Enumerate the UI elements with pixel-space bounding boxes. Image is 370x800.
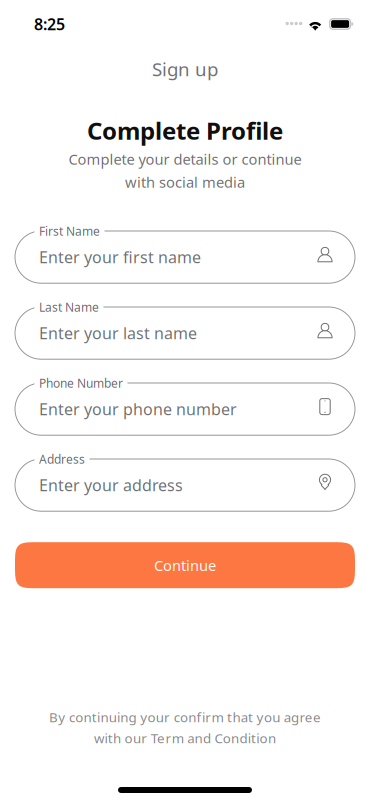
- staticText: Enter your phone number: [39, 398, 237, 420]
- staticText: 8:25: [34, 13, 65, 35]
- staticText: with social media: [125, 172, 245, 192]
- staticText: Last Name: [39, 299, 99, 315]
- staticText: Continue: [154, 555, 216, 575]
- staticText: Enter your first name: [39, 246, 201, 268]
- button[interactable]: Enter your address: [15, 459, 355, 511]
- button[interactable]: Continue: [15, 542, 355, 588]
- staticText: Complete your details or continue: [68, 149, 301, 169]
- staticText: Enter your last name: [39, 322, 197, 344]
- staticText: Enter your address: [39, 474, 183, 496]
- staticText: with our Term and Condition: [94, 729, 276, 747]
- staticText: Complete Profile: [87, 115, 283, 146]
- button[interactable]: Enter your phone number: [15, 383, 355, 435]
- staticText: Phone Number: [39, 375, 123, 391]
- staticText: Sign up: [152, 57, 218, 81]
- staticText: By continuing your confirm that you agre…: [49, 708, 321, 726]
- button[interactable]: Enter your last name: [15, 307, 355, 359]
- staticText: Address: [39, 451, 85, 467]
- button[interactable]: Enter your first name: [15, 231, 355, 283]
- staticText: First Name: [39, 223, 100, 239]
